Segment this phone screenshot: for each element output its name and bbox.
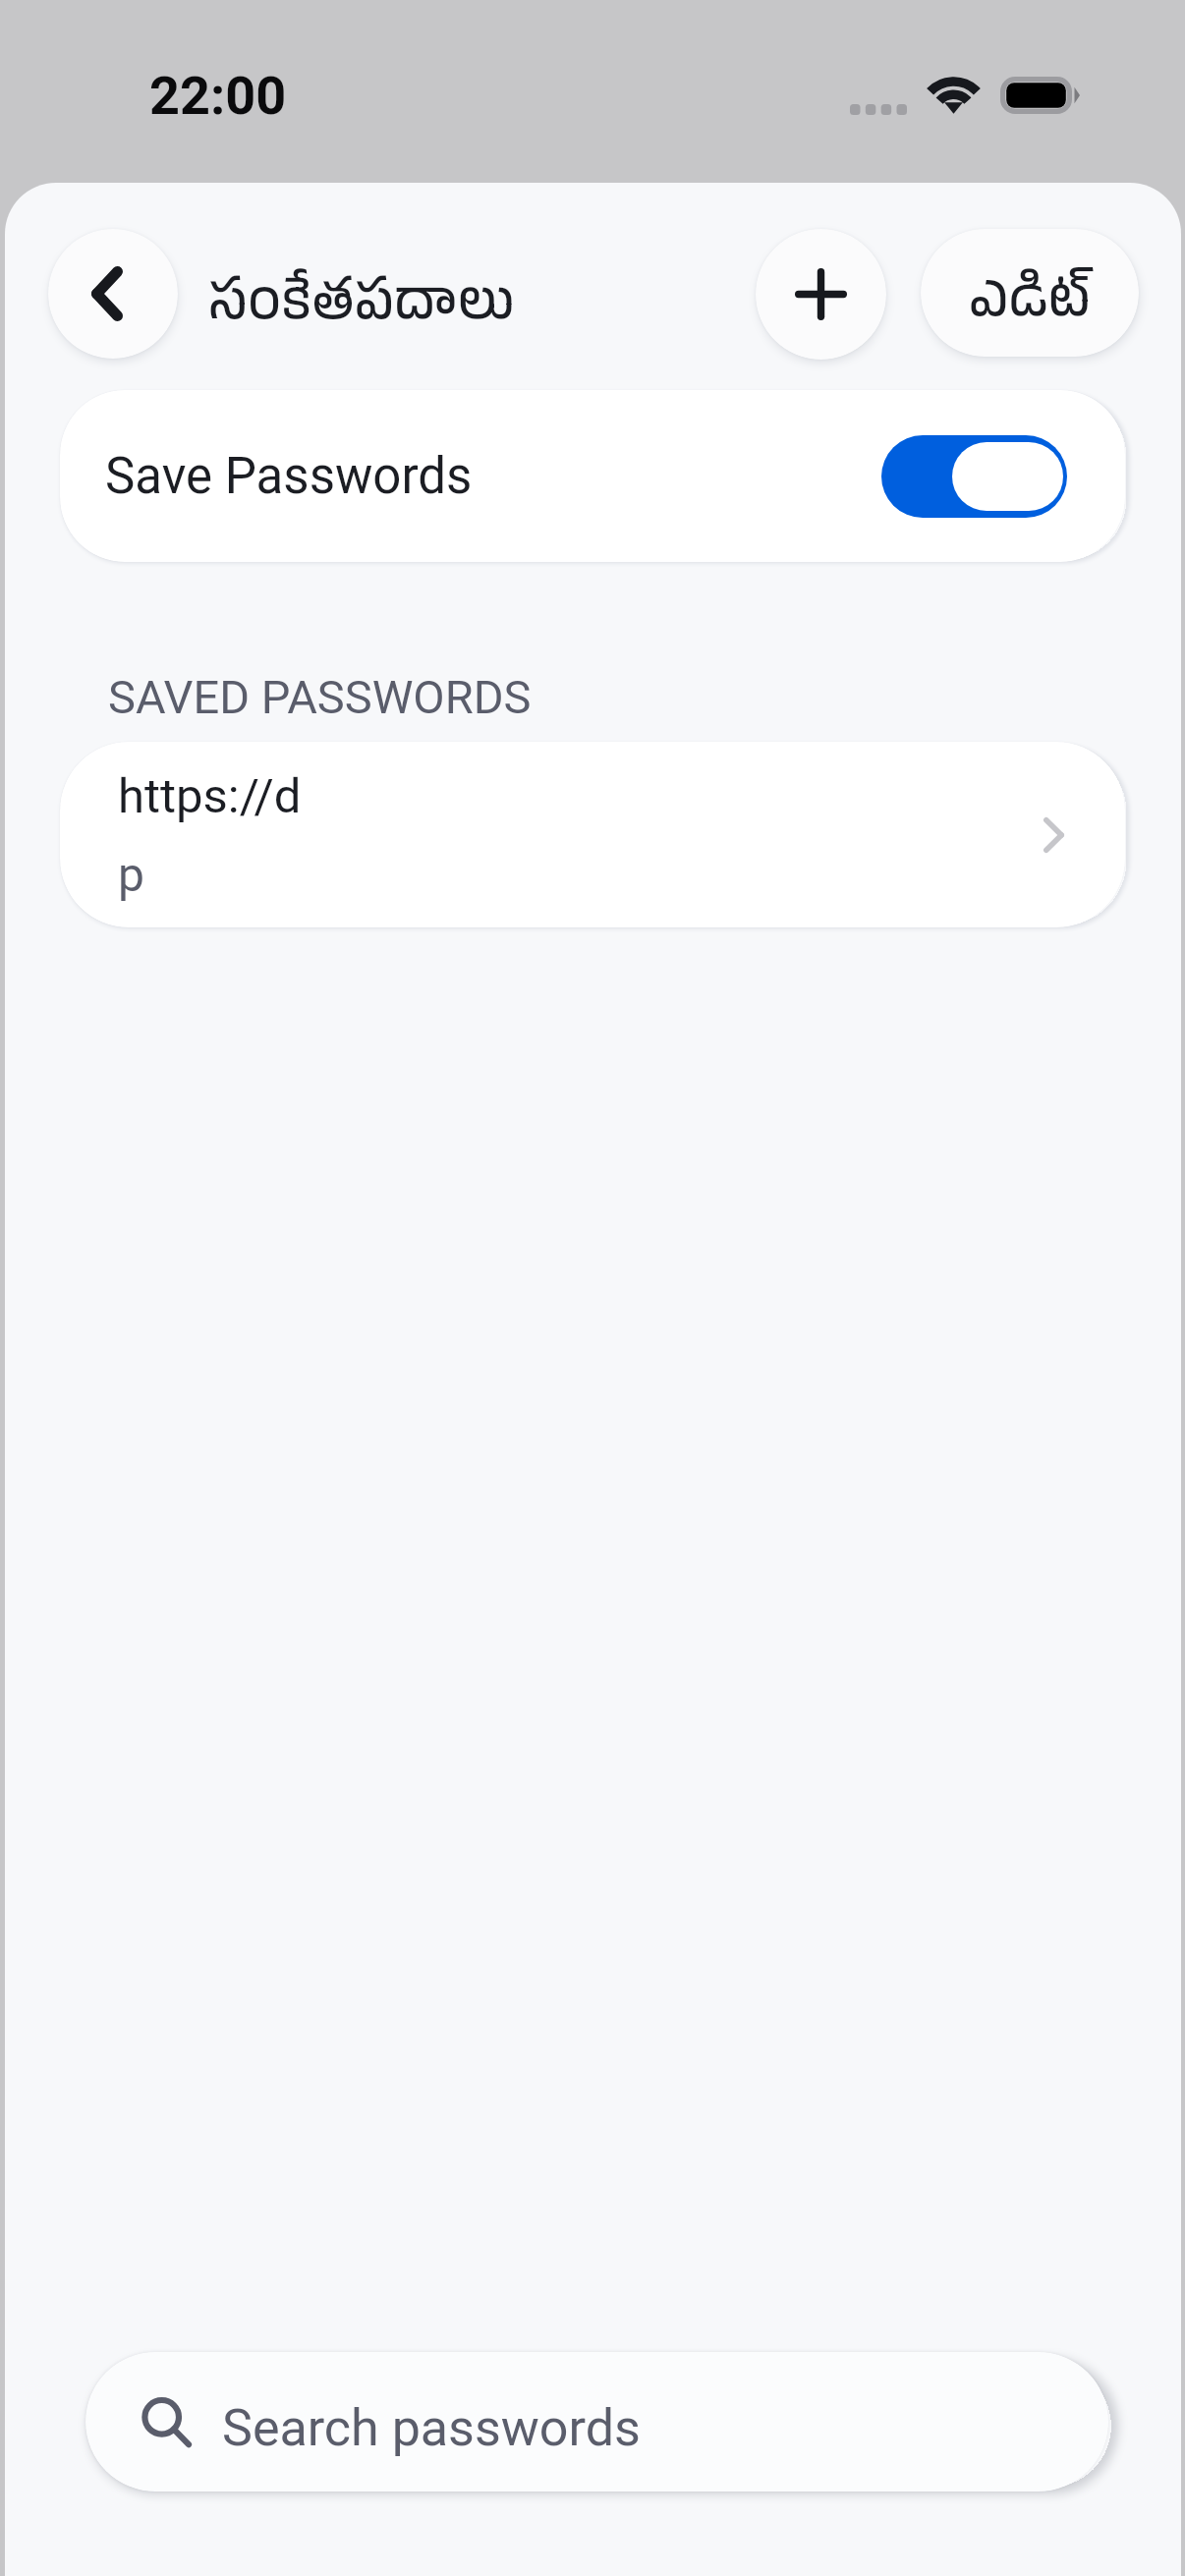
button[interactable]: Save Passwords [60,390,1125,562]
staticText: https://d [118,768,302,824]
button[interactable]: Search passwords [85,2352,1108,2492]
button[interactable] [881,435,1067,518]
staticText: ఎడిట్ [969,267,1091,347]
staticText: Search passwords [222,2398,641,2458]
button[interactable]: Add password [756,229,886,360]
button[interactable]: https://d [60,742,1125,927]
staticText: Save Passwords [105,447,473,506]
button[interactable]: ఎడిట్ [921,229,1139,357]
staticText: SAVED PASSWORDS [108,670,532,724]
staticText: p [118,847,144,902]
staticText: సంకేతపదాలు [208,270,515,350]
button[interactable]: Back [48,229,178,359]
staticText: 22:00 [149,65,287,127]
